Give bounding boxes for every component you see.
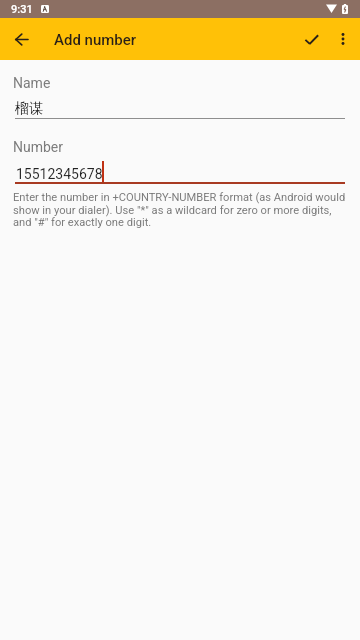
staticText: Name xyxy=(13,75,51,91)
staticText: 9:31 xyxy=(11,3,33,16)
button[interactable]: Save xyxy=(294,22,328,56)
staticText: 榴谋 xyxy=(15,100,43,118)
staticText: Number xyxy=(13,139,64,155)
staticText: Add number xyxy=(54,31,137,49)
button[interactable]: Name xyxy=(0,68,360,121)
staticText: 15512345678 xyxy=(16,166,103,182)
staticText: Enter the number in +COUNTRY-NUMBER form… xyxy=(13,191,347,228)
button[interactable]: Number xyxy=(0,132,360,185)
button[interactable]: More options xyxy=(328,24,358,54)
button[interactable]: Navigate up xyxy=(5,23,37,55)
